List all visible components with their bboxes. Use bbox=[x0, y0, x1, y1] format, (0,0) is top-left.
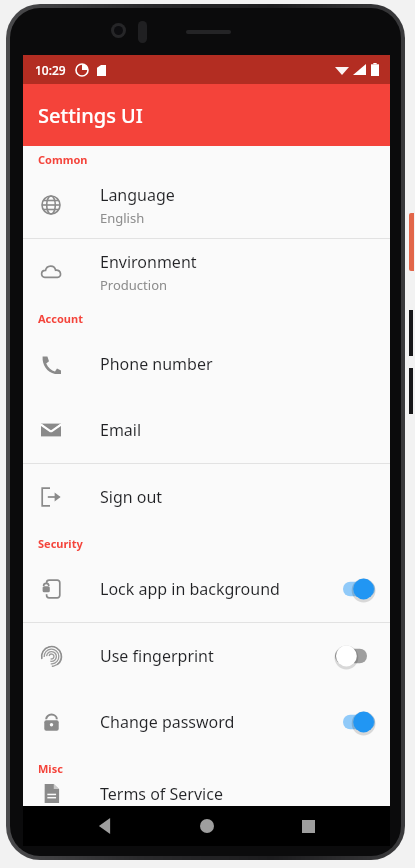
button[interactable]: Toggle on bbox=[335, 576, 375, 602]
staticText: 10:29 bbox=[35, 62, 66, 78]
staticText: Lock app in background bbox=[100, 578, 280, 600]
button[interactable]: Recent apps bbox=[288, 806, 328, 846]
button[interactable]: Toggle off bbox=[335, 643, 375, 669]
button[interactable]: Environment bbox=[23, 239, 390, 305]
button[interactable]: Toggle on bbox=[335, 709, 375, 735]
staticText: Terms of Service bbox=[100, 783, 223, 805]
staticText: Use fingerprint bbox=[100, 645, 214, 667]
staticText: Email bbox=[100, 419, 142, 441]
staticText: Language bbox=[100, 184, 175, 206]
button[interactable]: Back bbox=[85, 806, 125, 846]
staticText: Environment bbox=[100, 251, 197, 273]
button[interactable]: Email bbox=[23, 397, 390, 463]
staticText: Settings UI bbox=[38, 102, 143, 129]
button[interactable]: Terms of Service bbox=[23, 781, 390, 806]
button[interactable]: Language bbox=[23, 172, 390, 238]
staticText: Sign out bbox=[100, 486, 163, 508]
staticText: Security bbox=[38, 536, 83, 551]
staticText: English bbox=[100, 209, 145, 227]
button[interactable]: Sign out bbox=[23, 464, 390, 530]
button[interactable]: Home bbox=[187, 806, 227, 846]
staticText: Production bbox=[100, 276, 168, 294]
button[interactable]: Use fingerprint bbox=[23, 623, 390, 689]
button[interactable]: Phone number bbox=[23, 331, 390, 397]
staticText: Account bbox=[38, 311, 83, 326]
staticText: Misc bbox=[38, 761, 63, 776]
button[interactable]: Lock app in background bbox=[23, 556, 390, 622]
staticText: Phone number bbox=[100, 353, 213, 375]
button[interactable]: Change password bbox=[23, 689, 390, 755]
staticText: Common bbox=[38, 152, 88, 167]
staticText: Change password bbox=[100, 711, 235, 733]
